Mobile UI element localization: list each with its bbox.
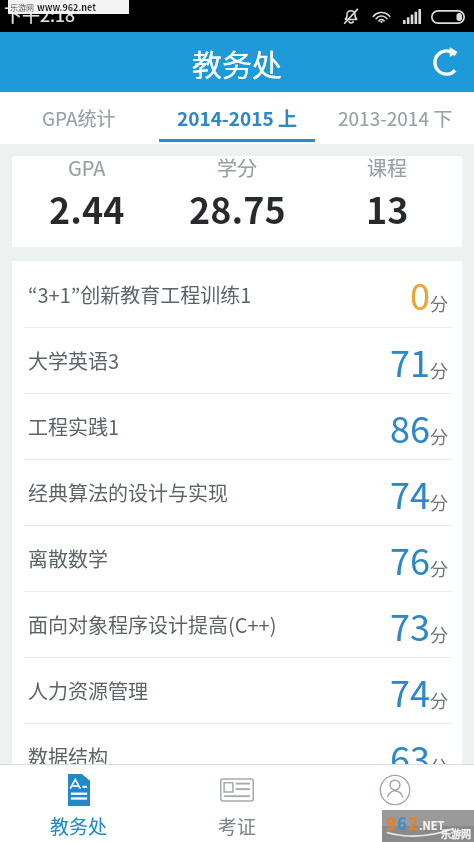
- staticText: 学分: [217, 156, 257, 182]
- staticText: 74: [390, 665, 430, 717]
- button[interactable]: Profile: [316, 765, 474, 842]
- staticText: 74: [390, 467, 430, 519]
- staticText: GPA: [68, 156, 106, 182]
- staticText: 分: [430, 489, 448, 515]
- button[interactable]: 2013-2014 下: [316, 92, 474, 144]
- staticText: 73: [390, 599, 430, 651]
- button[interactable]: 人力资源管理: [12, 658, 462, 723]
- staticText: 分: [430, 753, 448, 764]
- button[interactable]: 数据结构: [12, 724, 462, 764]
- staticText: 课程: [367, 156, 407, 182]
- button[interactable]: 大学英语3: [12, 328, 462, 393]
- staticText: 86: [390, 401, 430, 453]
- staticText: 分: [430, 423, 448, 449]
- button[interactable]: “3+1”创新教育工程训练1: [12, 261, 462, 327]
- staticText: 数据结构: [28, 742, 108, 764]
- button[interactable]: 面向对象程序设计提高(C++): [12, 592, 462, 657]
- staticText: 2.44: [49, 182, 125, 234]
- staticText: 2014-2015 上: [177, 104, 298, 132]
- staticText: 经典算法的设计与实现: [28, 478, 228, 507]
- staticText: 13: [366, 182, 409, 234]
- staticText: 乐游网: [441, 826, 471, 840]
- staticText: 分: [430, 357, 448, 383]
- button[interactable]: 教务处: [0, 765, 158, 842]
- button[interactable]: GPA统计: [0, 92, 158, 144]
- button[interactable]: 经典算法的设计与实现: [12, 460, 462, 525]
- staticText: www.962.net: [37, 1, 97, 14]
- button[interactable]: Refresh: [418, 32, 474, 92]
- button[interactable]: 工程实践1: [12, 394, 462, 459]
- staticText: 教务处: [50, 812, 108, 840]
- staticText: 2013-2014 下: [338, 104, 453, 132]
- staticText: 6: [397, 810, 408, 835]
- staticText: 63: [390, 731, 430, 764]
- staticText: 面向对象程序设计提高(C++): [28, 610, 277, 639]
- staticText: 分: [430, 687, 448, 713]
- button[interactable]: 2014-2015 上: [158, 92, 316, 144]
- staticText: 28.75: [189, 182, 286, 234]
- staticText: 大学英语3: [28, 346, 120, 375]
- staticText: 分: [430, 555, 448, 581]
- staticText: 工程实践1: [28, 412, 120, 441]
- staticText: GPA统计: [42, 104, 116, 132]
- staticText: 71: [390, 335, 430, 387]
- staticText: 离散数学: [28, 544, 108, 573]
- button[interactable]: 考证: [158, 765, 316, 842]
- button[interactable]: 离散数学: [12, 526, 462, 591]
- staticText: 人力资源管理: [28, 676, 148, 705]
- staticText: 分: [430, 621, 448, 647]
- staticText: 76: [390, 533, 430, 585]
- staticText: 教务处: [192, 41, 282, 84]
- staticText: 2: [408, 810, 419, 835]
- staticText: 分: [430, 290, 448, 316]
- staticText: 9: [386, 810, 397, 835]
- staticText: 下午2:18: [4, 1, 75, 27]
- staticText: .NET: [419, 817, 445, 833]
- staticText: 考证: [218, 812, 257, 840]
- staticText: “3+1”创新教育工程训练1: [28, 280, 252, 309]
- staticText: 0: [410, 268, 430, 320]
- staticText: 乐游网: [10, 2, 34, 14]
